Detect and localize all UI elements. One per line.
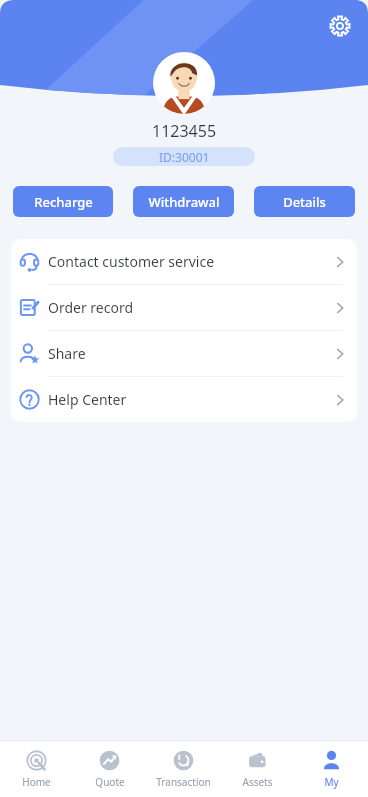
staticText: Details [283,193,326,211]
staticText: Assets [242,775,273,789]
staticText: Home [22,775,51,789]
button[interactable]: Help Center [11,377,357,422]
button[interactable]: Share [11,331,357,377]
staticText: Share [48,344,323,363]
staticText: Help Center [48,390,323,409]
button[interactable]: Recharge [13,186,113,217]
button[interactable]: Profile photo [153,52,215,114]
button[interactable]: My [294,741,368,797]
button[interactable]: Assets [220,741,294,797]
staticText: Withdrawal [148,193,220,211]
staticText: Transaction [156,775,211,789]
button[interactable]: Withdrawal [133,186,234,217]
staticText: Contact customer service [48,252,323,271]
button[interactable]: Transaction [146,741,220,797]
button[interactable]: Quote [73,741,146,797]
button[interactable]: Settings [320,6,360,46]
staticText: Recharge [34,193,93,211]
staticText: Order record [48,298,323,317]
staticText: ID:30001 [159,149,210,165]
staticText: My [324,775,339,789]
staticText: Quote [95,775,125,789]
button[interactable]: Contact customer service [11,239,357,285]
button[interactable]: Home [0,741,73,797]
staticText: 1123455 [152,120,217,142]
button[interactable]: Order record [11,285,357,331]
button[interactable]: ID:30001 [113,147,255,166]
button[interactable]: Details [254,186,355,217]
